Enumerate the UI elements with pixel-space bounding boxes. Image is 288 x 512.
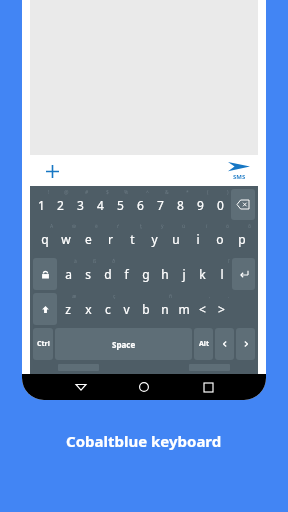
staticText: ü bbox=[182, 223, 186, 230]
button[interactable]: g bbox=[136, 257, 155, 291]
staticText: t bbox=[130, 231, 135, 247]
button[interactable]: i bbox=[187, 222, 209, 256]
staticText: p bbox=[238, 231, 246, 247]
staticText: 6 bbox=[137, 197, 144, 213]
staticText: w bbox=[61, 231, 71, 247]
staticText: o bbox=[216, 231, 224, 247]
staticText: ð bbox=[112, 258, 116, 265]
button[interactable]: o bbox=[209, 222, 231, 256]
staticText: ñ bbox=[169, 293, 173, 300]
staticText: 7 bbox=[157, 197, 164, 213]
staticText: c bbox=[105, 301, 111, 317]
button[interactable]: 6 bbox=[130, 188, 150, 221]
staticText: u bbox=[172, 231, 180, 247]
staticText: l bbox=[220, 266, 224, 282]
button[interactable]: y bbox=[143, 222, 165, 256]
button[interactable]: e bbox=[77, 222, 99, 256]
staticText: k bbox=[199, 266, 206, 282]
button[interactable]: Backspace bbox=[231, 189, 255, 220]
staticText: SMS bbox=[233, 173, 246, 181]
staticText: ÿ bbox=[161, 223, 164, 230]
staticText: ç bbox=[113, 293, 116, 300]
button[interactable]: Enter bbox=[232, 258, 255, 290]
button[interactable]: f bbox=[117, 257, 136, 291]
button[interactable]: Home bbox=[131, 374, 157, 400]
staticText: , bbox=[209, 293, 211, 300]
staticText: 5 bbox=[117, 197, 124, 213]
staticText: j bbox=[182, 266, 186, 282]
staticText: n bbox=[161, 301, 169, 317]
staticText: Alt bbox=[199, 339, 209, 349]
staticText: f bbox=[124, 266, 129, 282]
button[interactable]: 0 bbox=[210, 188, 230, 221]
staticText: ţ bbox=[140, 223, 142, 230]
staticText: z bbox=[65, 301, 71, 317]
staticText: 4 bbox=[97, 197, 104, 213]
button[interactable]: Send SMS bbox=[228, 160, 250, 181]
staticText: ^ bbox=[146, 189, 149, 196]
button[interactable]: Space bbox=[55, 328, 192, 360]
button[interactable]: p bbox=[231, 222, 253, 256]
staticText: 3 bbox=[77, 197, 84, 213]
button[interactable]: Back bbox=[68, 374, 94, 400]
button[interactable]: w bbox=[55, 222, 77, 256]
staticText: * bbox=[186, 189, 189, 196]
button[interactable]: < bbox=[193, 292, 212, 326]
button[interactable]: Recents bbox=[195, 374, 221, 400]
staticText: Cobaltblue keyboard bbox=[66, 431, 222, 451]
button[interactable]: z bbox=[58, 292, 78, 326]
staticText: ! bbox=[48, 189, 50, 196]
button[interactable]: Add attachment bbox=[42, 161, 62, 181]
button[interactable]: q bbox=[34, 222, 55, 256]
button[interactable]: 7 bbox=[150, 188, 170, 221]
button[interactable]: x bbox=[78, 292, 98, 326]
button[interactable]: Right bbox=[236, 328, 255, 360]
staticText: % bbox=[124, 189, 129, 196]
button[interactable]: Left bbox=[215, 328, 234, 360]
button[interactable]: l bbox=[212, 257, 231, 291]
button[interactable]: 2 bbox=[51, 188, 70, 221]
staticText: 2 bbox=[57, 197, 64, 213]
staticText: 1 bbox=[38, 197, 45, 213]
button[interactable]: s bbox=[78, 257, 98, 291]
staticText: Space bbox=[112, 339, 136, 350]
button[interactable]: > bbox=[212, 292, 231, 326]
staticText: í bbox=[206, 223, 208, 230]
button[interactable]: n bbox=[155, 292, 174, 326]
staticText: @ bbox=[64, 189, 69, 196]
button[interactable]: 4 bbox=[90, 188, 110, 221]
button[interactable]: Ctrl bbox=[33, 328, 53, 360]
button[interactable]: r bbox=[99, 222, 121, 256]
staticText: ) bbox=[227, 189, 229, 196]
staticText: v bbox=[123, 301, 130, 317]
button[interactable]: v bbox=[117, 292, 136, 326]
button[interactable]: 8 bbox=[170, 188, 190, 221]
staticText: æ bbox=[72, 293, 77, 300]
staticText: 0 bbox=[217, 197, 224, 213]
button[interactable]: m bbox=[174, 292, 193, 326]
button[interactable]: Alt bbox=[194, 328, 213, 360]
button[interactable]: Shift bbox=[33, 293, 57, 325]
button[interactable]: c bbox=[98, 292, 117, 326]
button[interactable]: u bbox=[165, 222, 187, 256]
button[interactable]: a bbox=[58, 257, 78, 291]
button[interactable]: d bbox=[98, 257, 117, 291]
button[interactable]: j bbox=[174, 257, 193, 291]
button[interactable]: t bbox=[121, 222, 143, 256]
staticText: s bbox=[85, 266, 91, 282]
staticText: ä bbox=[74, 258, 77, 265]
staticText: $ bbox=[106, 189, 109, 196]
button[interactable]: b bbox=[136, 292, 155, 326]
staticText: a bbox=[65, 266, 72, 282]
button[interactable]: h bbox=[155, 257, 174, 291]
button[interactable]: 3 bbox=[70, 188, 90, 221]
button[interactable]: 5 bbox=[110, 188, 130, 221]
button[interactable]: 9 bbox=[190, 188, 210, 221]
button[interactable]: Caps lock bbox=[33, 258, 57, 290]
button[interactable]: k bbox=[193, 257, 212, 291]
button[interactable]: 1 bbox=[32, 188, 51, 221]
staticText: ő bbox=[248, 223, 252, 230]
